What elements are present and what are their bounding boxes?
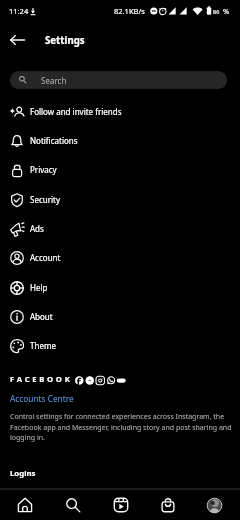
button[interactable]: Search bbox=[10, 71, 227, 89]
staticText: Help bbox=[30, 282, 48, 293]
button[interactable]: Help bbox=[0, 273, 240, 302]
staticText: Notifications bbox=[30, 135, 78, 146]
staticText: Search bbox=[41, 75, 67, 86]
button[interactable]: Search bbox=[49, 490, 97, 520]
staticText: Privacy bbox=[30, 164, 57, 175]
button[interactable]: Reels bbox=[97, 490, 144, 520]
button[interactable]: Shop bbox=[144, 490, 191, 520]
button[interactable]: Ads bbox=[0, 214, 240, 243]
staticText: Control settings for connected experienc… bbox=[10, 412, 232, 442]
staticText: Security bbox=[30, 194, 61, 205]
button[interactable]: Back bbox=[3, 26, 31, 54]
button[interactable]: Accounts Centre bbox=[10, 393, 74, 404]
button[interactable]: Account bbox=[0, 243, 240, 272]
staticText: 82.1KB/s bbox=[114, 6, 145, 16]
button[interactable]: Security bbox=[0, 185, 240, 214]
staticText: FACEBOOK bbox=[10, 374, 73, 384]
staticText: Settings bbox=[45, 34, 85, 47]
staticText: Accounts Centre bbox=[10, 393, 74, 404]
staticText: Theme bbox=[30, 340, 56, 351]
staticText: 11:24 bbox=[9, 6, 29, 16]
button[interactable]: About bbox=[0, 302, 240, 331]
staticText: Logins bbox=[10, 468, 36, 479]
button[interactable]: Theme bbox=[0, 331, 240, 360]
staticText: About bbox=[30, 311, 53, 322]
staticText: Account bbox=[30, 252, 61, 263]
staticText: Follow and invite friends bbox=[30, 106, 122, 117]
button[interactable]: Follow and invite friends bbox=[0, 97, 240, 126]
staticText: 86 bbox=[213, 8, 220, 15]
staticText: Ads bbox=[30, 223, 44, 234]
button[interactable]: Notifications bbox=[0, 126, 240, 155]
button[interactable]: Privacy bbox=[0, 155, 240, 184]
button[interactable]: Home bbox=[1, 490, 49, 520]
staticText: % bbox=[223, 6, 230, 16]
button[interactable]: Profile bbox=[191, 490, 238, 520]
